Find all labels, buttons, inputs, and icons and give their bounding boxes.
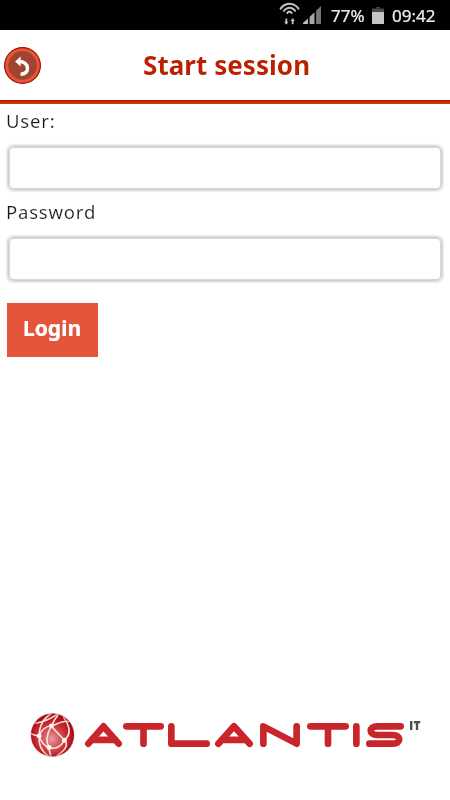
staticText: User:	[6, 108, 56, 133]
button[interactable]: Login	[7, 303, 98, 357]
button[interactable]	[7, 145, 443, 191]
staticText: 09:42	[392, 4, 436, 27]
staticText: Login	[23, 314, 82, 343]
staticText: 77%	[331, 4, 365, 27]
button[interactable]: Back	[4, 47, 41, 84]
button[interactable]	[7, 236, 443, 282]
staticText: Start session	[143, 47, 311, 82]
staticText: Password	[6, 199, 97, 224]
